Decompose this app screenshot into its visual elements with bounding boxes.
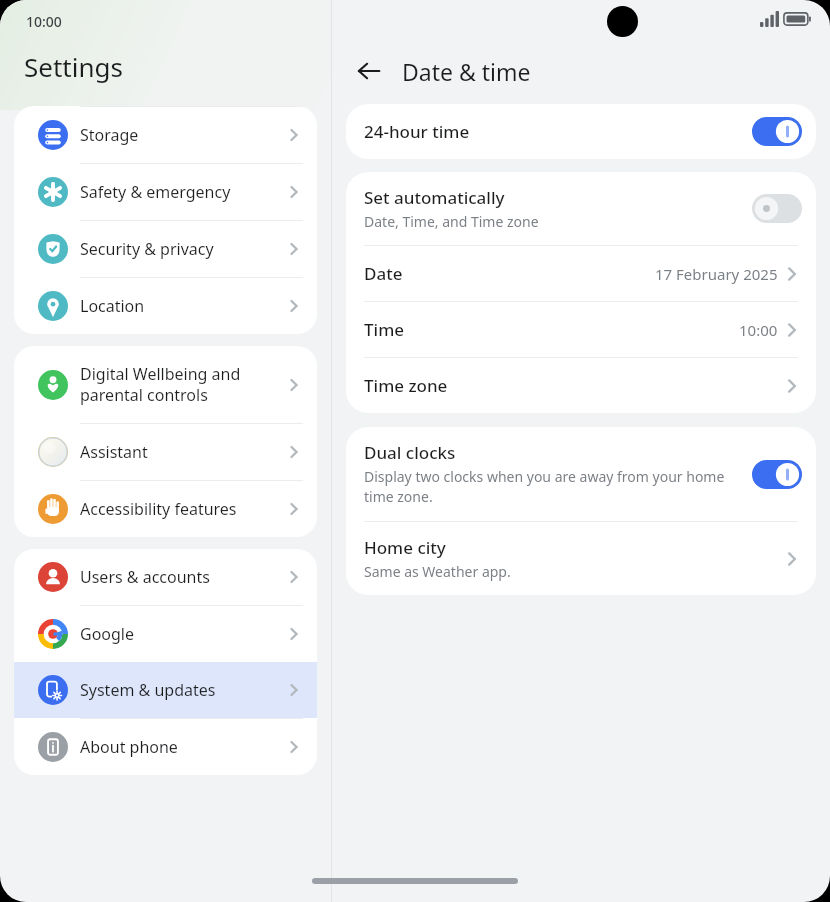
button[interactable]: Digital Wellbeing and parental controls bbox=[14, 346, 317, 423]
staticText: Settings bbox=[24, 49, 123, 84]
staticText: Google bbox=[80, 623, 135, 645]
staticText: Display two clocks when you are away fro… bbox=[364, 467, 742, 507]
staticText: System & updates bbox=[80, 679, 216, 701]
staticText: Dual clocks bbox=[364, 441, 456, 464]
staticText: Security & privacy bbox=[80, 238, 214, 260]
staticText: 10:00 bbox=[739, 320, 778, 340]
staticText: Accessibility features bbox=[80, 498, 237, 520]
button[interactable]: Time zone bbox=[346, 358, 816, 413]
button[interactable]: On bbox=[752, 460, 802, 489]
button[interactable]: Assistant bbox=[14, 424, 317, 480]
button[interactable]: 24-hour time bbox=[346, 104, 816, 159]
button[interactable]: Location bbox=[14, 278, 317, 334]
staticText: Digital Wellbeing and parental controls bbox=[80, 363, 241, 406]
staticText: Assistant bbox=[80, 441, 148, 463]
button[interactable]: Home city bbox=[346, 522, 816, 595]
staticText: Date bbox=[364, 262, 403, 285]
staticText: Location bbox=[80, 295, 145, 317]
staticText: Date & time bbox=[402, 56, 531, 87]
button[interactable]: System & updates bbox=[14, 662, 317, 718]
button[interactable]: Set automatically bbox=[346, 172, 816, 245]
staticText: Time bbox=[364, 318, 405, 341]
button[interactable]: Back bbox=[346, 48, 392, 94]
button[interactable]: Off bbox=[752, 194, 802, 223]
staticText: Storage bbox=[80, 124, 139, 146]
staticText: 24-hour time bbox=[364, 120, 470, 143]
button[interactable]: Dual clocks bbox=[346, 427, 816, 521]
button[interactable]: About phone bbox=[14, 719, 317, 775]
button[interactable]: Security & privacy bbox=[14, 221, 317, 277]
button[interactable]: Google bbox=[14, 606, 317, 662]
staticText: 17 February 2025 bbox=[655, 264, 778, 284]
button[interactable]: Date bbox=[346, 246, 816, 301]
button[interactable]: Accessibility features bbox=[14, 481, 317, 537]
button[interactable]: On bbox=[752, 117, 802, 146]
button[interactable]: Safety & emergency bbox=[14, 164, 317, 220]
staticText: Set automatically bbox=[364, 186, 505, 209]
button[interactable]: Users & accounts bbox=[14, 549, 317, 605]
staticText: Time zone bbox=[364, 374, 448, 397]
staticText: About phone bbox=[80, 736, 178, 758]
staticText: Safety & emergency bbox=[80, 181, 231, 203]
staticText: Home city bbox=[364, 536, 446, 559]
staticText: Same as Weather app. bbox=[364, 562, 511, 581]
button[interactable]: Storage bbox=[14, 107, 317, 163]
staticText: Users & accounts bbox=[80, 566, 210, 588]
staticText: Date, Time, and Time zone bbox=[364, 212, 539, 231]
staticText: 10:00 bbox=[26, 12, 62, 31]
button[interactable]: Time bbox=[346, 302, 816, 357]
